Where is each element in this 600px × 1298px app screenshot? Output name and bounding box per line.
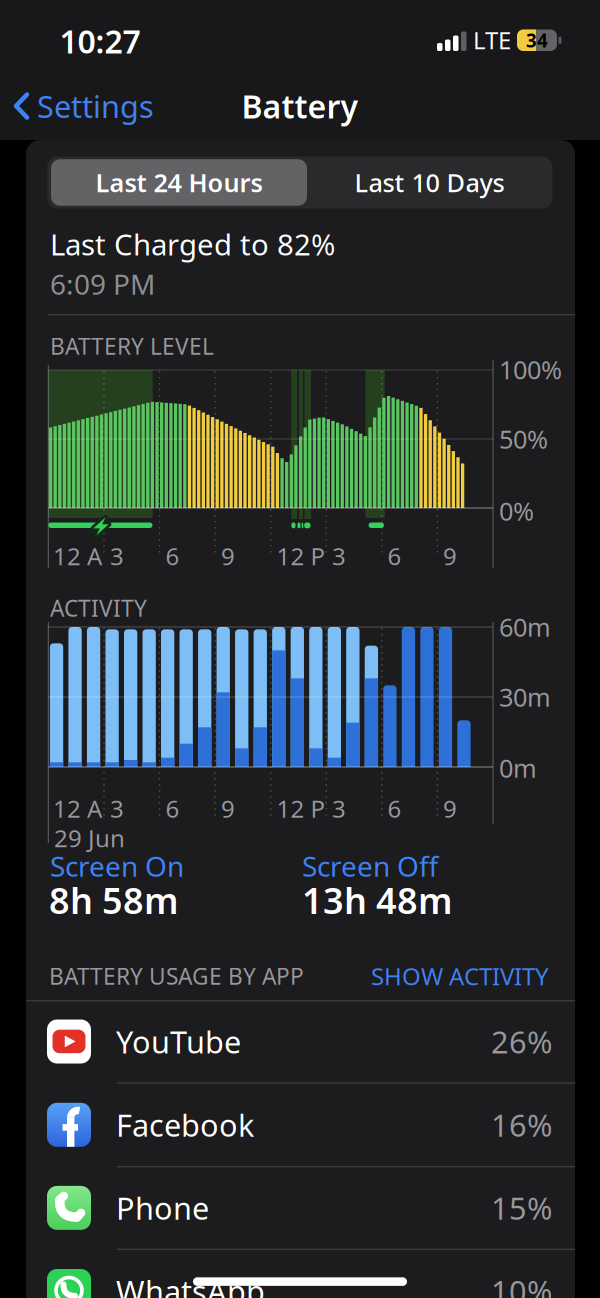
staticText: 15% xyxy=(491,1187,552,1228)
staticText: 6:09 PM xyxy=(50,265,155,303)
staticText: 6 xyxy=(165,540,179,572)
staticText: 3 xyxy=(332,793,346,824)
button[interactable]: Last 24 Hours xyxy=(51,159,307,206)
button[interactable]: Last 10 Days xyxy=(307,159,552,206)
staticText: 0m xyxy=(499,751,537,785)
staticText: 3 xyxy=(332,540,346,572)
staticText: 3 xyxy=(110,793,124,824)
staticText: BATTERY LEVEL xyxy=(50,331,214,361)
staticText: Last 24 Hours xyxy=(95,166,262,199)
staticText: 50% xyxy=(499,422,548,456)
staticText: YouTube xyxy=(116,1021,241,1062)
staticText: 34 xyxy=(526,28,548,53)
button[interactable]: Phone xyxy=(26,1167,575,1249)
staticText: WhatsApp xyxy=(116,1271,265,1298)
staticText: 100% xyxy=(499,353,562,386)
staticText: Battery xyxy=(241,85,358,127)
button[interactable]: SHOW ACTIVITY xyxy=(249,960,549,992)
staticText: 26% xyxy=(491,1021,552,1062)
staticText: 12 A xyxy=(53,793,102,824)
staticText: Last Charged to 82% xyxy=(50,224,335,263)
staticText: 12 P xyxy=(276,793,325,824)
staticText: 16% xyxy=(491,1104,552,1145)
staticText: 13h 48m xyxy=(302,876,453,924)
button[interactable]: Settings xyxy=(14,86,184,126)
staticText: 60m xyxy=(499,610,551,644)
staticText: ACTIVITY xyxy=(50,593,147,623)
staticText: Screen On xyxy=(50,847,184,885)
staticText: 29 Jun xyxy=(54,822,125,854)
staticText: 3 xyxy=(110,540,124,572)
staticText: Screen Off xyxy=(302,847,438,885)
button[interactable]: YouTube xyxy=(26,1000,575,1082)
staticText: 6 xyxy=(387,793,401,824)
staticText: SHOW ACTIVITY xyxy=(371,960,549,992)
staticText: 12 A xyxy=(53,540,102,572)
staticText: 10:27 xyxy=(59,20,140,62)
staticText: Phone xyxy=(116,1187,209,1228)
staticText: 10% xyxy=(491,1271,552,1298)
staticText: 6 xyxy=(165,793,179,824)
button[interactable]: WhatsApp xyxy=(26,1250,575,1298)
staticText: Last 10 Days xyxy=(354,166,504,199)
staticText: BATTERY USAGE BY APP xyxy=(49,961,304,991)
staticText: 9 xyxy=(443,793,457,824)
staticText: 0% xyxy=(499,494,534,528)
button[interactable]: Facebook xyxy=(26,1084,575,1166)
staticText: 9 xyxy=(221,540,235,572)
staticText: 30m xyxy=(499,680,551,714)
staticText: Settings xyxy=(37,86,154,126)
staticText: LTE xyxy=(473,24,511,56)
staticText: 9 xyxy=(221,793,235,824)
staticText: 9 xyxy=(443,540,457,572)
staticText: 6 xyxy=(387,540,401,572)
staticText: 8h 58m xyxy=(49,876,179,924)
staticText: 12 P xyxy=(276,540,325,572)
staticText: Facebook xyxy=(116,1104,254,1145)
